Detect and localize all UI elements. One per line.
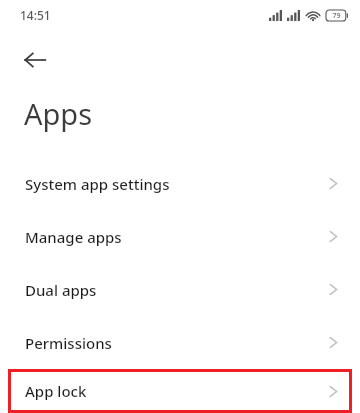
button[interactable]: Dual apps [0, 263, 360, 316]
staticText: System app settings [25, 174, 170, 194]
button[interactable]: System app settings [0, 157, 360, 210]
button[interactable]: App lock [8, 369, 352, 413]
button[interactable]: Back [13, 38, 57, 82]
button[interactable]: Permissions [0, 316, 360, 369]
staticText: Dual apps [25, 280, 97, 300]
staticText: 14:51 [20, 7, 51, 23]
staticText: Permissions [25, 333, 112, 353]
staticText: Manage apps [25, 227, 122, 247]
button[interactable]: Manage apps [0, 210, 360, 263]
staticText: 79 [332, 11, 341, 21]
staticText: Apps [24, 94, 93, 133]
staticText: App lock [25, 381, 87, 401]
